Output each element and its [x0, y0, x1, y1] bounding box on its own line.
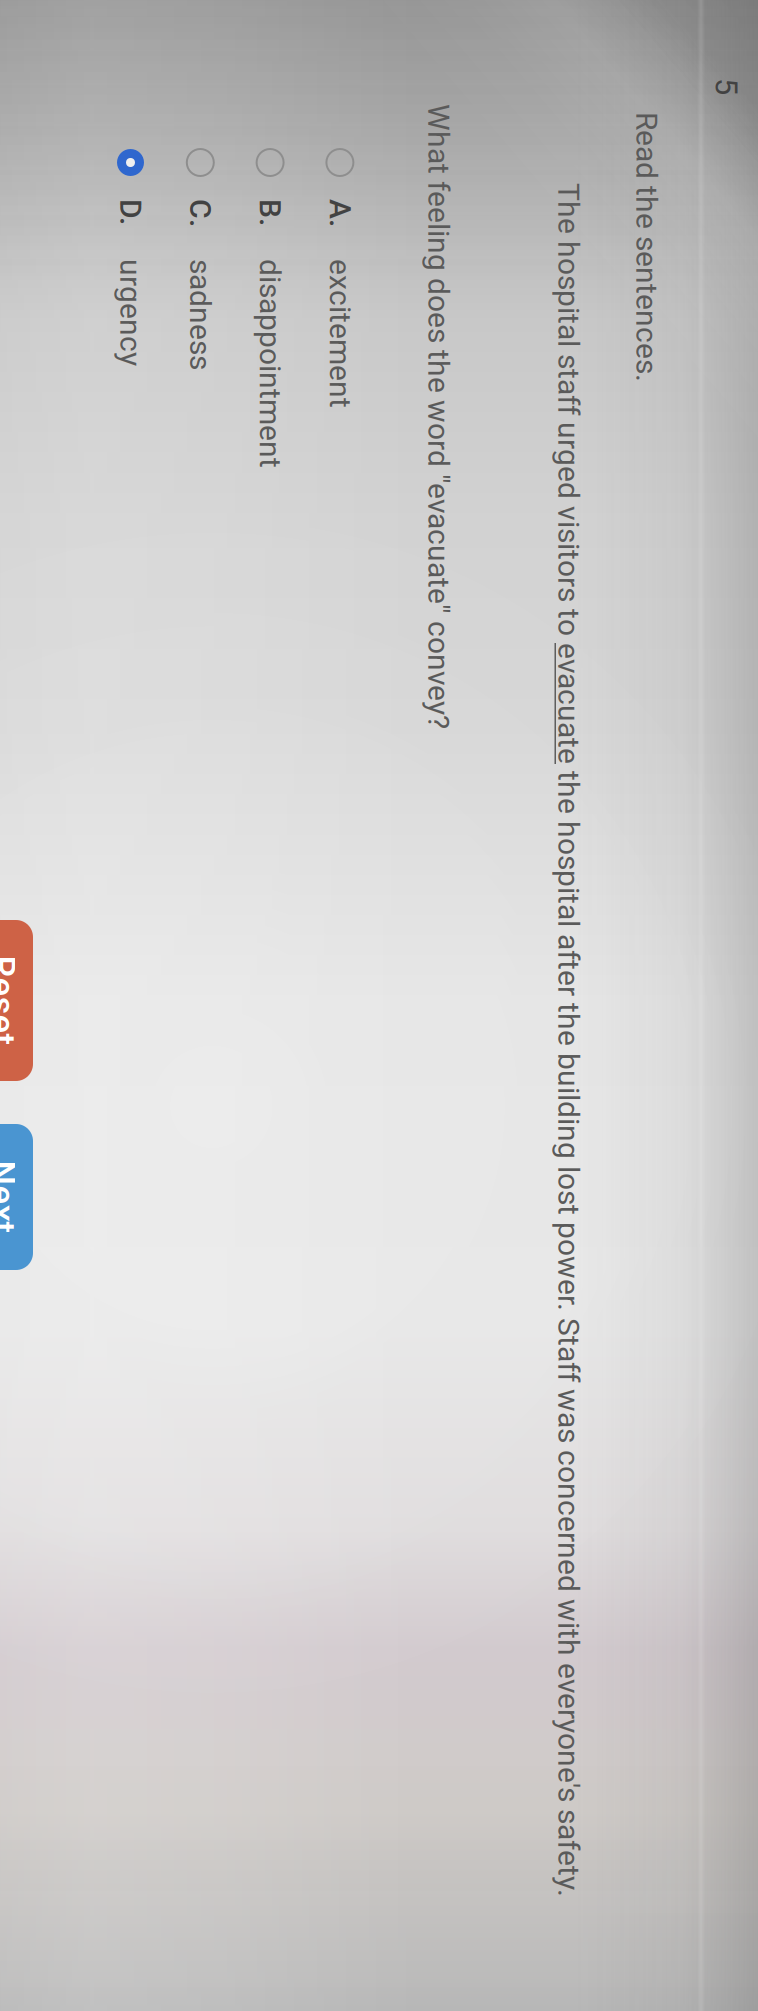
button[interactable]: Next [497, 1351, 643, 1413]
button[interactable]: A. [0, 1022, 758, 1068]
button[interactable]: C. [0, 1161, 758, 1207]
staticText: The hospital staff urged visitors to eva… [0, 798, 758, 834]
button[interactable]: D. [0, 1231, 758, 1277]
button[interactable]: B. [0, 1091, 758, 1137]
staticText: What feeling does the word "evacuate" co… [0, 928, 102, 964]
staticText: Next [534, 1362, 607, 1403]
